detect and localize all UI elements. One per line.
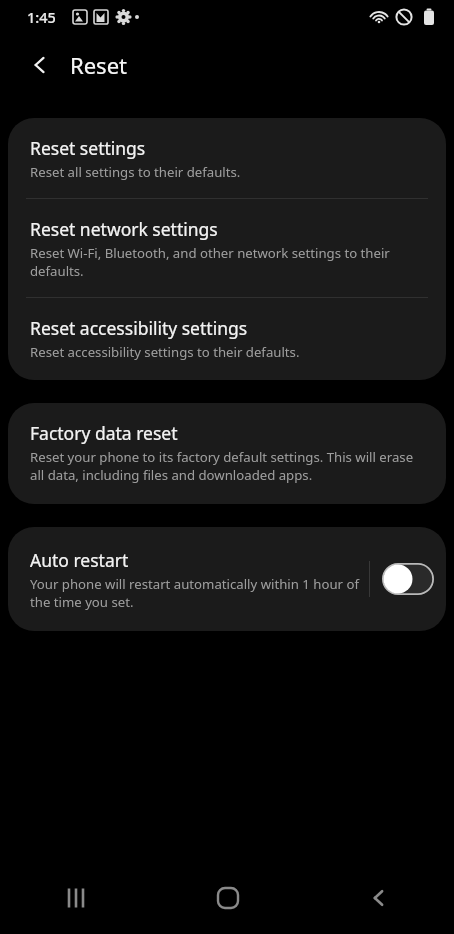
button[interactable]: Recent apps — [0, 862, 152, 934]
staticText: Reset all settings to their defaults. — [30, 163, 241, 181]
staticText: Factory data reset — [30, 421, 178, 445]
staticText: Reset accessibility settings to their de… — [30, 343, 300, 361]
staticText: Your phone will restart automatically wi… — [30, 575, 361, 611]
staticText: Reset your phone to its factory default … — [30, 448, 430, 484]
staticText: Auto restart — [30, 548, 129, 572]
button[interactable]: Reset network settings — [8, 199, 446, 297]
staticText: Reset network settings — [30, 217, 218, 241]
staticText: Reset Wi-Fi, Bluetooth, and other networ… — [30, 244, 430, 280]
button[interactable]: Reset accessibility settings — [8, 298, 446, 380]
button[interactable]: Back — [303, 862, 454, 934]
button[interactable]: Factory data reset — [8, 403, 446, 504]
staticText: Reset accessibility settings — [30, 316, 248, 340]
button[interactable]: Auto restart toggle — [382, 527, 434, 631]
staticText: Reset settings — [30, 136, 146, 160]
button[interactable]: Home — [152, 862, 303, 934]
button[interactable]: Reset settings — [8, 118, 446, 198]
button[interactable]: Auto restart — [8, 527, 369, 631]
button[interactable]: Back — [18, 43, 62, 87]
staticText: Reset — [70, 50, 127, 80]
staticText: 1:45 — [27, 7, 56, 27]
